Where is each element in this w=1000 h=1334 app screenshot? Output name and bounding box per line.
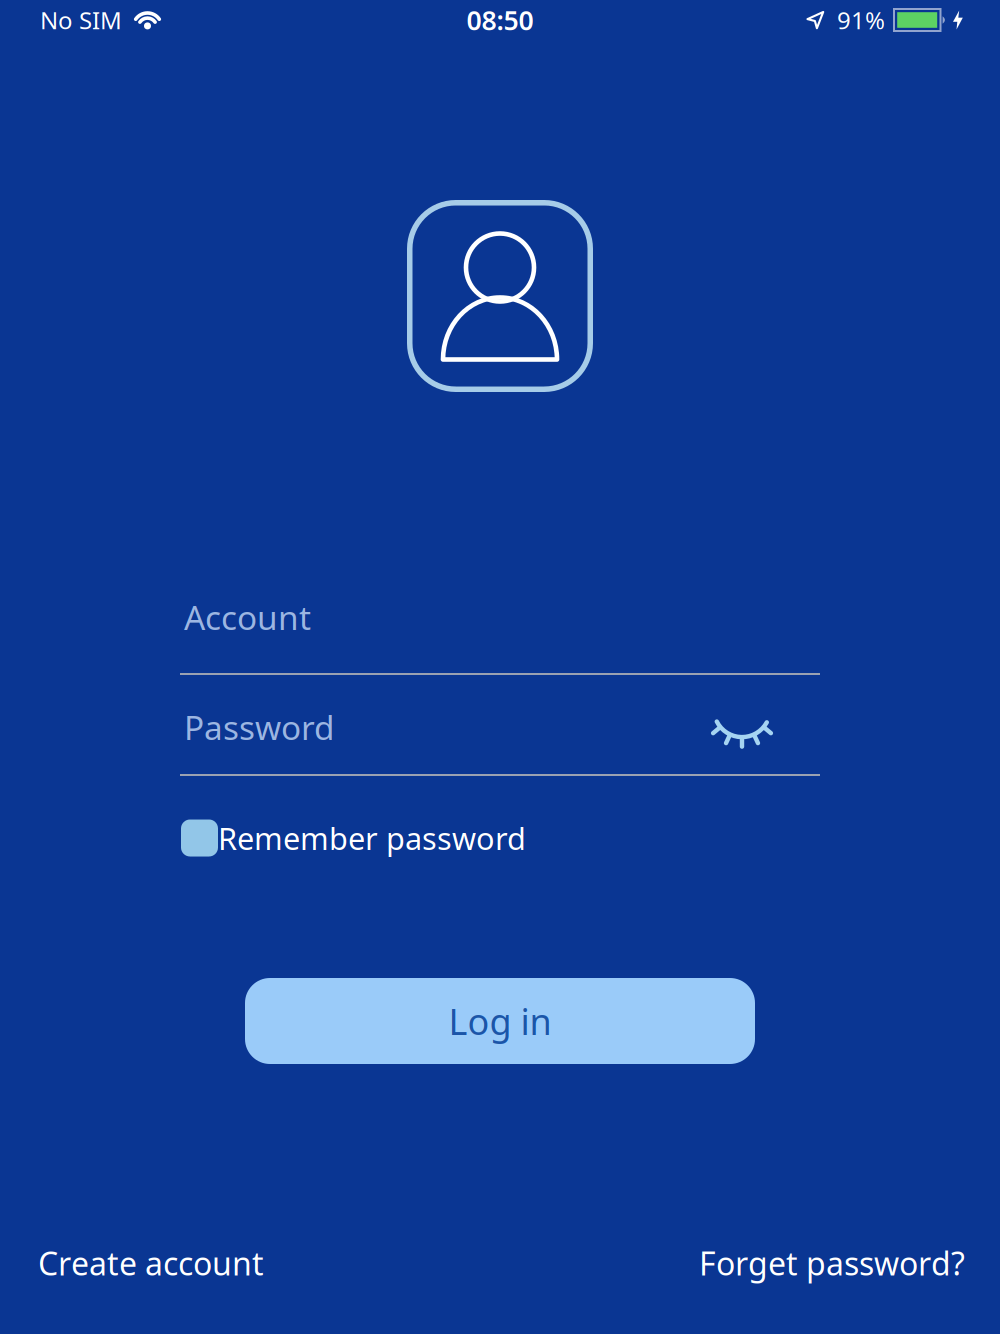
staticText: Log in [448, 997, 551, 1045]
button[interactable]: Create account [38, 1242, 264, 1284]
staticText: No SIM [40, 4, 122, 36]
button[interactable]: Remember password [181, 818, 526, 858]
staticText: Password [184, 705, 335, 749]
staticText: Forget password? [699, 1242, 965, 1284]
staticText: Remember password [218, 818, 526, 858]
button[interactable]: Log in [245, 978, 755, 1064]
staticText: Create account [38, 1242, 264, 1284]
button[interactable]: Forget password? [699, 1242, 965, 1284]
staticText: 91% [837, 4, 885, 36]
staticText: 08:50 [466, 2, 533, 38]
button[interactable]: Show password [712, 710, 772, 756]
staticText: Account [184, 595, 311, 639]
